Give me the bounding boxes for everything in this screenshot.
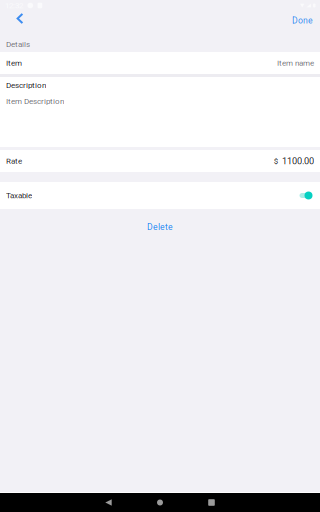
staticText: Item Description: [6, 97, 64, 106]
staticText: Rate: [6, 156, 22, 166]
staticText: Details: [6, 40, 30, 49]
button[interactable]: Back: [5, 10, 32, 29]
button[interactable]: Recent apps: [186, 493, 237, 512]
staticText: Item name: [277, 58, 314, 68]
staticText: $: [274, 156, 278, 166]
button[interactable]: Done: [288, 11, 317, 28]
staticText: Delete: [147, 222, 173, 232]
staticText: Item: [6, 58, 22, 68]
staticText: Taxable: [6, 191, 32, 200]
button[interactable]: Taxable: [299, 182, 320, 209]
button[interactable]: Delete: [133, 217, 187, 237]
button[interactable]: Back: [83, 493, 134, 512]
staticText: Description: [6, 81, 46, 90]
staticText: Done: [292, 15, 313, 26]
staticText: 1100.00: [282, 156, 314, 166]
button[interactable]: Home: [134, 493, 186, 512]
